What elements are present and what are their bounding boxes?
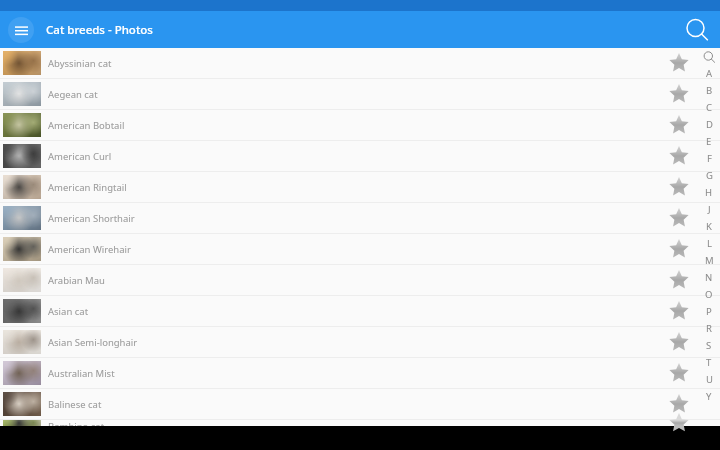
staticText: O bbox=[705, 288, 713, 301]
staticText: U bbox=[706, 373, 713, 386]
staticText: American Bobtail bbox=[48, 119, 666, 132]
staticText: Bambino cat bbox=[48, 420, 666, 426]
staticText: Arabian Mau bbox=[48, 274, 666, 287]
button[interactable]: Favorite Bambino cat bbox=[666, 420, 692, 426]
button[interactable]: Search bbox=[682, 15, 712, 45]
staticText: J bbox=[708, 203, 711, 216]
staticText: R bbox=[706, 322, 712, 335]
button[interactable]: Favorite American Ringtail bbox=[666, 174, 692, 200]
button[interactable]: American Ringtail bbox=[0, 172, 720, 202]
button[interactable]: American Curl bbox=[0, 141, 720, 171]
button[interactable]: Arabian Mau bbox=[0, 265, 720, 295]
staticText: A bbox=[706, 67, 713, 80]
staticText: S bbox=[706, 339, 712, 352]
button[interactable]: Favorite Australian Mist bbox=[666, 360, 692, 386]
staticText: M bbox=[705, 254, 714, 267]
button[interactable]: Favorite American Bobtail bbox=[666, 112, 692, 138]
staticText: Y bbox=[706, 390, 712, 403]
button[interactable]: Open navigation drawer bbox=[8, 17, 34, 43]
staticText: American Wirehair bbox=[48, 243, 666, 256]
button[interactable]: American Shorthair bbox=[0, 203, 720, 233]
staticText: Cat breeds - Photos bbox=[46, 22, 153, 38]
staticText: Australian Mist bbox=[48, 367, 666, 380]
button[interactable]: Asian cat bbox=[0, 296, 720, 326]
staticText: American Shorthair bbox=[48, 212, 666, 225]
staticText: H bbox=[705, 186, 713, 199]
button[interactable]: Asian Semi-longhair bbox=[0, 327, 720, 357]
staticText: D bbox=[706, 118, 713, 131]
staticText: P bbox=[706, 305, 712, 318]
staticText: T bbox=[706, 356, 712, 369]
staticText: Balinese cat bbox=[48, 398, 666, 411]
staticText: K bbox=[706, 220, 712, 233]
button[interactable]: American Bobtail bbox=[0, 110, 720, 140]
button[interactable]: Australian Mist bbox=[0, 358, 720, 388]
button[interactable]: Favorite Asian Semi-longhair bbox=[666, 329, 692, 355]
staticText: American Curl bbox=[48, 150, 666, 163]
staticText: Abyssinian cat bbox=[48, 57, 666, 70]
staticText: Aegean cat bbox=[48, 88, 666, 101]
button[interactable]: Alphabet index bbox=[698, 48, 720, 405]
button[interactable]: Favorite Abyssinian cat bbox=[666, 50, 692, 76]
staticText: F bbox=[707, 152, 712, 165]
staticText: L bbox=[707, 237, 712, 250]
staticText: E bbox=[706, 135, 712, 148]
button[interactable]: Favorite Asian cat bbox=[666, 298, 692, 324]
button[interactable]: Favorite Arabian Mau bbox=[666, 267, 692, 293]
button[interactable]: Favorite Balinese cat bbox=[666, 391, 692, 417]
button[interactable]: Favorite American Curl bbox=[666, 143, 692, 169]
staticText: Asian Semi-longhair bbox=[48, 336, 666, 349]
button[interactable]: Favorite Aegean cat bbox=[666, 81, 692, 107]
button[interactable]: Bambino cat bbox=[0, 420, 720, 426]
button[interactable]: American Wirehair bbox=[0, 234, 720, 264]
button[interactable]: Aegean cat bbox=[0, 79, 720, 109]
button[interactable]: Favorite American Wirehair bbox=[666, 236, 692, 262]
button[interactable]: Abyssinian cat bbox=[0, 48, 720, 78]
staticText: C bbox=[706, 101, 713, 114]
button[interactable]: Favorite American Shorthair bbox=[666, 205, 692, 231]
staticText: B bbox=[706, 84, 713, 97]
button[interactable]: Balinese cat bbox=[0, 389, 720, 419]
staticText: G bbox=[706, 169, 713, 182]
staticText: American Ringtail bbox=[48, 181, 666, 194]
staticText: Asian cat bbox=[48, 305, 666, 318]
staticText: N bbox=[705, 271, 713, 284]
